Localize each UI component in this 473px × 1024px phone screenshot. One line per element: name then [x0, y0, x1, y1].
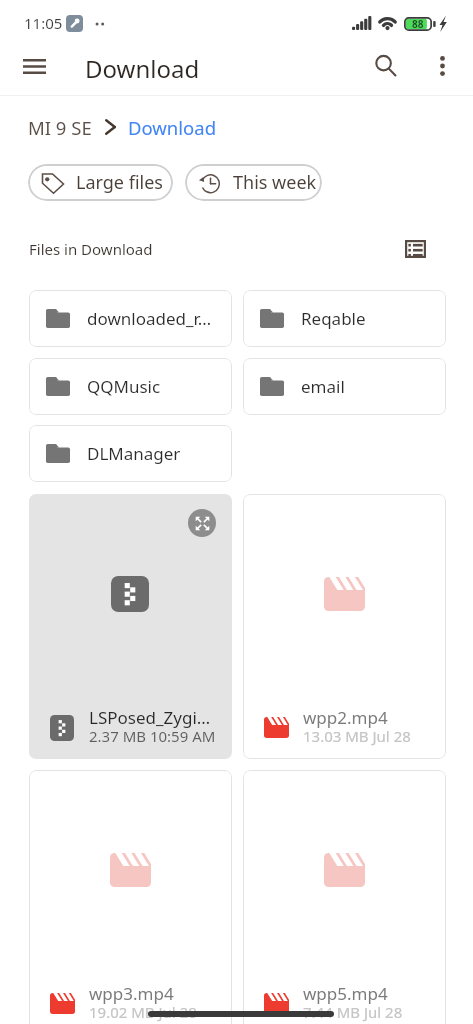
- staticText: downloaded_r…: [87, 307, 212, 330]
- staticText: 2.37 MB 10:59 AM: [89, 726, 216, 746]
- button[interactable]: QQMusic: [29, 358, 232, 415]
- staticText: 13.03 MB Jul 28: [303, 726, 411, 746]
- button[interactable]: Expand preview: [29, 494, 232, 759]
- button[interactable]: This week: [185, 164, 322, 201]
- staticText: Reqable: [301, 307, 366, 330]
- staticText: Download: [128, 115, 217, 140]
- staticText: 88: [412, 17, 424, 31]
- button[interactable]: DLManager: [29, 425, 232, 482]
- button[interactable]: Navigation menu: [12, 44, 56, 88]
- staticText: DLManager: [87, 442, 181, 465]
- staticText: Download: [85, 52, 200, 85]
- staticText: wpp5.mp4: [303, 982, 388, 1005]
- button[interactable]: Large files: [28, 164, 173, 201]
- staticText: 11:05: [24, 13, 63, 33]
- button[interactable]: wpp5.mp4: [243, 770, 446, 1024]
- button[interactable]: MI 9 SE: [28, 115, 92, 140]
- button[interactable]: More options: [420, 44, 464, 88]
- staticText: 7.44 MB Jul 28: [303, 1002, 403, 1022]
- staticText: MI 9 SE: [28, 115, 92, 140]
- staticText: 19.02 MB Jul 28: [89, 1002, 197, 1022]
- staticText: wpp3.mp4: [89, 982, 174, 1005]
- staticText: email: [301, 375, 345, 398]
- button[interactable]: wpp2.mp4: [243, 494, 446, 759]
- staticText: Files in Download: [29, 239, 153, 259]
- staticText: Large files: [76, 170, 163, 195]
- button[interactable]: Switch to list view: [399, 233, 431, 265]
- button[interactable]: email: [243, 358, 446, 415]
- button[interactable]: wpp3.mp4: [29, 770, 232, 1024]
- staticText: QQMusic: [87, 375, 161, 398]
- button[interactable]: downloaded_r…: [29, 290, 232, 347]
- button[interactable]: Search: [364, 44, 408, 88]
- button[interactable]: Expand preview: [188, 509, 216, 537]
- button[interactable]: Reqable: [243, 290, 446, 347]
- button[interactable]: Download: [128, 115, 217, 140]
- staticText: This week: [233, 170, 317, 195]
- staticText: wpp2.mp4: [303, 706, 388, 729]
- staticText: LSPosed_Zygi…: [89, 706, 211, 729]
